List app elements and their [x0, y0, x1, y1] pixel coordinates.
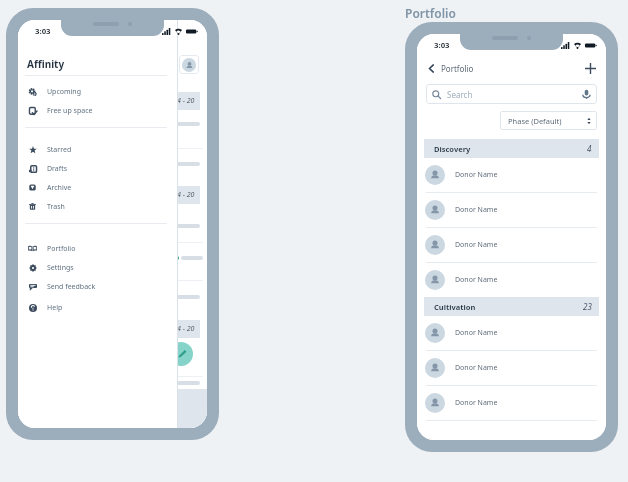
- button[interactable]: Donor Name: [417, 351, 606, 385]
- staticText: Trash: [47, 202, 65, 212]
- button[interactable]: Archive: [18, 178, 178, 197]
- staticText: 4 - 20: [177, 324, 195, 334]
- button[interactable]: Donor Name: [417, 316, 606, 350]
- staticText: Portfolio: [47, 244, 76, 254]
- staticText: 4 - 20: [177, 96, 195, 106]
- staticText: Cultivation: [434, 302, 476, 312]
- staticText: Discovery: [434, 144, 471, 154]
- other: Voice search: [582, 89, 591, 99]
- staticText: 3:03: [35, 26, 51, 37]
- button[interactable]: Back: [427, 63, 478, 74]
- button[interactable]: Help: [18, 298, 178, 317]
- staticText: Search: [447, 89, 473, 100]
- button[interactable]: Phase (Default): [500, 111, 597, 130]
- button[interactable]: Donor Name: [417, 263, 606, 297]
- button[interactable]: Free up space: [18, 101, 178, 120]
- button[interactable]: Add: [582, 60, 598, 76]
- button[interactable]: Compose: [169, 342, 193, 366]
- staticText: Portfolio: [405, 5, 456, 21]
- button[interactable]: Drafts: [18, 159, 178, 178]
- staticText: Portfolio: [441, 63, 474, 74]
- staticText: Donor Name: [455, 170, 498, 180]
- button[interactable]: Donor Name: [417, 386, 606, 420]
- staticText: Upcoming: [47, 87, 81, 97]
- button[interactable]: Trash: [18, 197, 178, 216]
- staticText: Donor Name: [455, 328, 498, 338]
- staticText: Donor Name: [455, 398, 498, 408]
- staticText: Donor Name: [455, 275, 498, 285]
- staticText: Drafts: [47, 164, 68, 174]
- staticText: Free up space: [47, 106, 93, 116]
- button[interactable]: Search: [426, 84, 597, 104]
- staticText: Settings: [47, 263, 74, 273]
- staticText: Help: [47, 303, 63, 313]
- button[interactable]: Send feedback: [18, 277, 178, 296]
- button[interactable]: Portfolio: [18, 239, 178, 258]
- button[interactable]: Donor Name: [417, 158, 606, 192]
- button[interactable]: Upcoming: [18, 82, 178, 101]
- staticText: Send feedback: [47, 282, 96, 292]
- staticText: Donor Name: [455, 240, 498, 250]
- button[interactable]: Cultivation: [424, 297, 599, 316]
- staticText: 23: [583, 301, 592, 312]
- button[interactable]: Donor Name: [417, 228, 606, 262]
- staticText: Donor Name: [455, 363, 498, 373]
- staticText: 4 - 20: [177, 190, 195, 200]
- button[interactable]: Starred: [18, 140, 178, 159]
- button[interactable]: Account: [179, 55, 199, 74]
- staticText: Affinity: [27, 57, 65, 71]
- staticText: Phase (Default): [508, 116, 562, 126]
- staticText: Donor Name: [455, 205, 498, 215]
- staticText: 3:03: [434, 40, 450, 51]
- button[interactable]: Settings: [18, 258, 178, 277]
- button[interactable]: Donor Name: [417, 193, 606, 227]
- staticText: Starred: [47, 145, 72, 155]
- staticText: Archive: [47, 183, 72, 193]
- staticText: 4: [587, 143, 592, 154]
- button[interactable]: Discovery: [424, 139, 599, 158]
- other: Back: [427, 64, 436, 73]
